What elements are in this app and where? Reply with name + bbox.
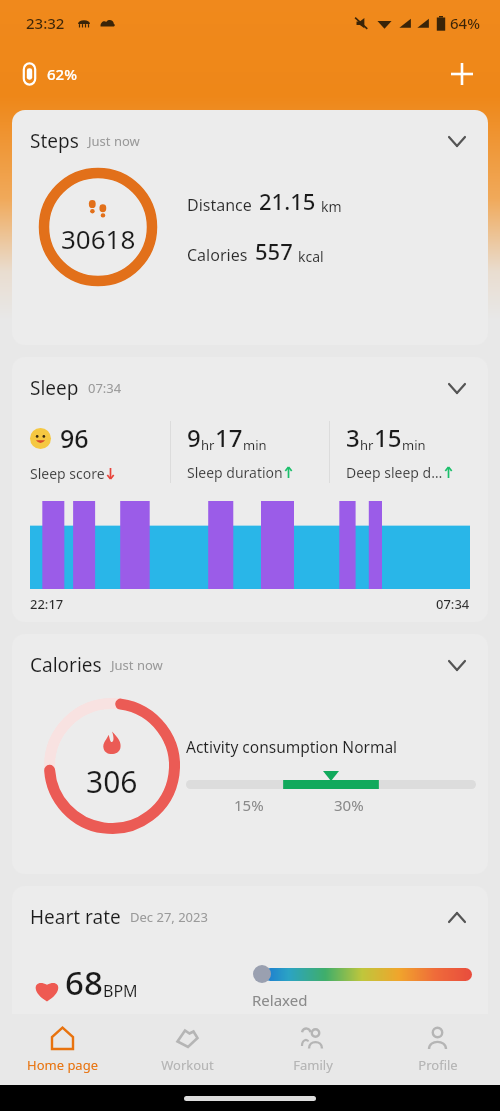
button[interactable]: Sleep — [12, 357, 488, 622]
button[interactable]: Steps — [12, 110, 488, 160]
staticText: 21.15 — [259, 186, 316, 216]
staticText: Heart rate — [30, 904, 121, 930]
staticText: 22:17 — [30, 595, 64, 613]
staticText: Sleep duration — [187, 463, 283, 482]
staticText: Workout — [161, 1056, 214, 1074]
staticText: Activity consumption Normal — [186, 736, 398, 757]
button[interactable]: 62% — [22, 62, 77, 86]
button[interactable]: Expand — [440, 648, 474, 682]
button[interactable]: Calories — [12, 634, 488, 684]
staticText: Relaxed — [252, 990, 308, 1010]
staticText: km — [321, 197, 342, 216]
staticText: 15% — [234, 795, 264, 815]
button[interactable]: Calories — [12, 634, 488, 874]
staticText: 23:32 — [26, 13, 65, 33]
staticText: 17 — [215, 421, 243, 454]
staticText: Sleep score — [30, 464, 105, 483]
button[interactable]: Collapse — [440, 900, 474, 934]
staticText: min — [402, 436, 426, 454]
staticText: 96 — [60, 421, 89, 455]
staticText: 30% — [334, 795, 364, 815]
staticText: 07:34 — [88, 379, 122, 397]
button[interactable]: Home page — [0, 1014, 125, 1085]
button[interactable]: Expand — [440, 124, 474, 158]
button[interactable]: Heart rate — [12, 886, 488, 936]
staticText: BPM — [103, 980, 138, 1002]
staticText: 15 — [374, 421, 402, 454]
button[interactable]: Profile — [375, 1014, 500, 1085]
staticText: 306 — [86, 761, 138, 802]
button[interactable]: Workout — [125, 1014, 250, 1085]
staticText: hr — [360, 436, 374, 454]
staticText: 30618 — [61, 221, 136, 256]
staticText: Just now — [111, 656, 163, 674]
staticText: Distance — [187, 194, 252, 216]
button[interactable]: Expand — [440, 371, 474, 405]
staticText: 9 — [187, 421, 201, 454]
staticText: 62% — [47, 64, 77, 84]
staticText: Calories — [30, 652, 102, 678]
staticText: Dec 27, 2023 — [130, 908, 208, 926]
button[interactable]: Steps — [12, 110, 488, 345]
staticText: 3 — [346, 421, 360, 454]
staticText: 07:34 — [436, 595, 470, 613]
button[interactable]: Add device — [440, 52, 484, 96]
staticText: Profile — [418, 1056, 458, 1074]
staticText: 68 — [65, 960, 103, 1005]
staticText: min — [243, 436, 267, 454]
staticText: Calories — [187, 244, 248, 266]
staticText: 64% — [450, 13, 480, 33]
staticText: Home page — [27, 1056, 98, 1074]
staticText: hr — [201, 436, 215, 454]
button[interactable]: Family — [250, 1014, 375, 1085]
staticText: 557 — [255, 236, 293, 266]
staticText: Deep sleep d… — [346, 463, 443, 482]
button[interactable]: Sleep — [12, 357, 488, 407]
staticText: kcal — [298, 247, 324, 266]
staticText: Sleep — [30, 375, 79, 401]
staticText: Steps — [30, 128, 79, 154]
button[interactable]: Heart rate — [12, 886, 488, 1076]
staticText: Family — [293, 1056, 333, 1074]
staticText: Just now — [88, 132, 140, 150]
